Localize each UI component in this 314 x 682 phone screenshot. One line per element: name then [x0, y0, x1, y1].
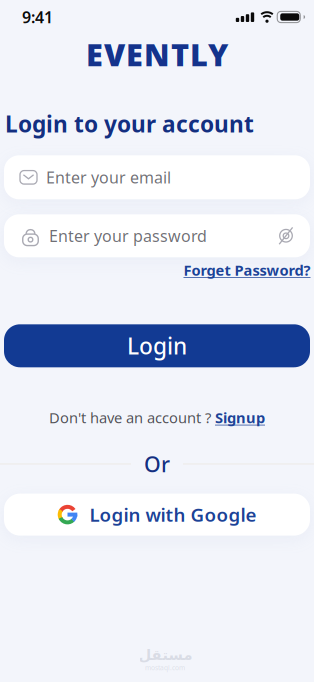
staticText: Forget Password? [183, 260, 310, 280]
button[interactable]: Enter your email [4, 155, 310, 199]
staticText: Login with Google [89, 502, 256, 527]
staticText: Enter your email [46, 167, 171, 188]
staticText: Enter your password [49, 225, 207, 246]
staticText: مستقل [138, 646, 192, 663]
button[interactable]: Login [4, 324, 310, 367]
staticText: Signup [215, 408, 265, 427]
button[interactable]: Signup [215, 408, 265, 427]
staticText: Or [144, 450, 170, 478]
staticText: Login [127, 331, 187, 361]
button[interactable]: Show password [275, 225, 310, 247]
staticText: mostaql.com [145, 663, 185, 672]
staticText: EVENTLY [86, 34, 228, 75]
button[interactable]: Forget Password? [183, 260, 310, 280]
staticText: Don't have an account ? [49, 408, 211, 427]
staticText: 9:41 [22, 6, 53, 28]
button[interactable]: Enter your password [4, 214, 310, 257]
button[interactable]: Login with Google [4, 494, 310, 536]
staticText: Login to your account [5, 109, 254, 139]
